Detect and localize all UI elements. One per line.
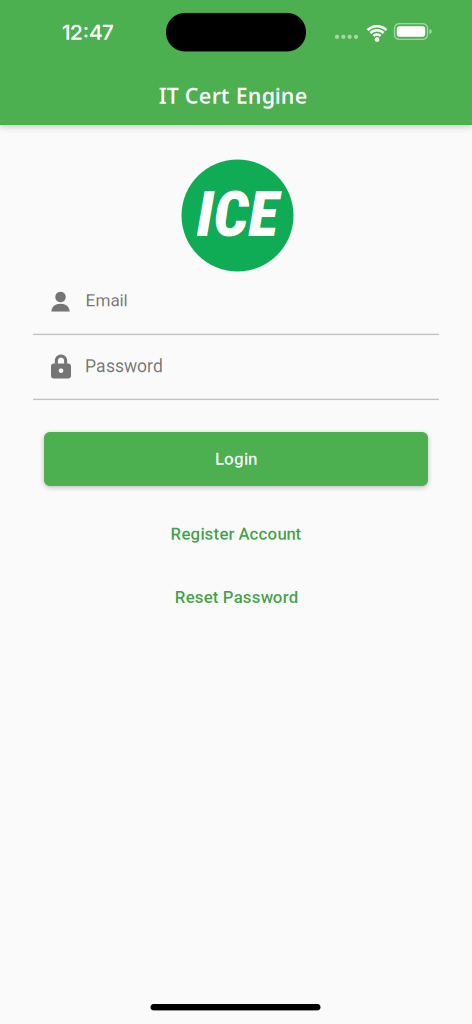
staticText: Password <box>85 356 163 376</box>
button[interactable]: Reset Password <box>161 577 312 617</box>
staticText: Login <box>215 449 257 469</box>
staticText: IT Cert Engine <box>159 81 308 110</box>
button[interactable]: Login <box>44 432 428 486</box>
button[interactable]: Register Account <box>156 514 315 554</box>
button[interactable]: Email <box>33 283 439 335</box>
staticText: 12:47 <box>62 20 114 45</box>
staticText: Register Account <box>170 524 301 544</box>
staticText: Email <box>85 290 127 310</box>
button[interactable]: Password <box>33 348 439 400</box>
staticText: ICE <box>196 178 278 251</box>
staticText: Reset Password <box>175 587 298 607</box>
